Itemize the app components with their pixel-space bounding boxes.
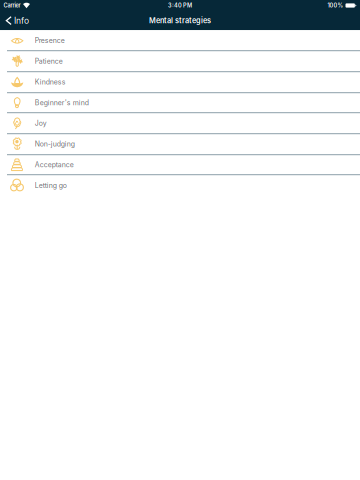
button[interactable]: Joy	[0, 113, 360, 134]
staticText: Beginner's mind	[35, 98, 89, 107]
staticText: Carrier	[3, 2, 20, 9]
staticText: Letting go	[35, 181, 67, 190]
staticText: 100%	[327, 2, 343, 9]
staticText: Acceptance	[35, 161, 74, 169]
staticText: Info	[14, 15, 29, 26]
button[interactable]: Beginner's mind	[0, 92, 360, 113]
staticText: Mental strategies	[149, 16, 211, 25]
staticText: Kindness	[35, 78, 66, 86]
staticText: Joy	[35, 119, 47, 128]
button[interactable]: Info	[0, 11, 35, 30]
staticText: Presence	[35, 36, 65, 45]
staticText: 3:40 PM	[168, 2, 192, 9]
staticText: Patience	[35, 57, 63, 65]
button[interactable]: Presence	[0, 30, 360, 51]
staticText: Non-judging	[35, 140, 75, 148]
button[interactable]: Kindness	[0, 72, 360, 92]
button[interactable]: Non-judging	[0, 134, 360, 154]
button[interactable]: Patience	[0, 51, 360, 72]
button[interactable]: Letting go	[0, 175, 360, 196]
button[interactable]: Acceptance	[0, 154, 360, 175]
